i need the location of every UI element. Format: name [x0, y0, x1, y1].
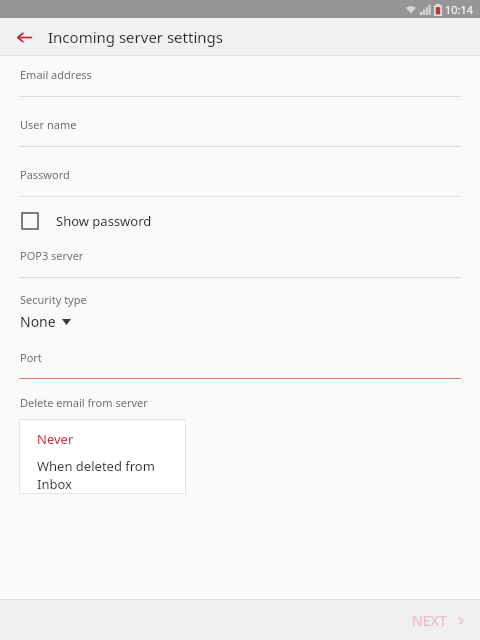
staticText: Email address [20, 67, 92, 82]
button[interactable]: Password [0, 162, 480, 186]
staticText: 10:14 [445, 2, 474, 17]
staticText: Security type [20, 292, 87, 307]
staticText: None [20, 312, 56, 331]
staticText: Show password [56, 212, 152, 230]
button[interactable]: Email address [0, 62, 480, 86]
button[interactable]: Back [10, 23, 38, 51]
staticText: Incoming server settings [48, 27, 223, 47]
button[interactable]: User name [0, 112, 480, 136]
staticText: Delete email from server [20, 395, 148, 410]
button[interactable]: When deleted from Inbox [20, 457, 185, 493]
button[interactable]: POP3 server [0, 243, 480, 267]
button[interactable]: Port [0, 345, 480, 369]
staticText: POP3 server [20, 248, 84, 263]
staticText: User name [20, 117, 77, 132]
button[interactable]: Never [20, 420, 185, 457]
button[interactable]: NEXT [412, 611, 466, 630]
staticText: Port [20, 350, 42, 365]
staticText: When deleted from Inbox [37, 457, 185, 493]
staticText: NEXT [412, 611, 447, 630]
button[interactable]: Show password [0, 207, 480, 235]
staticText: Never [37, 430, 74, 448]
staticText: Password [20, 167, 70, 182]
button[interactable]: None [20, 312, 71, 331]
